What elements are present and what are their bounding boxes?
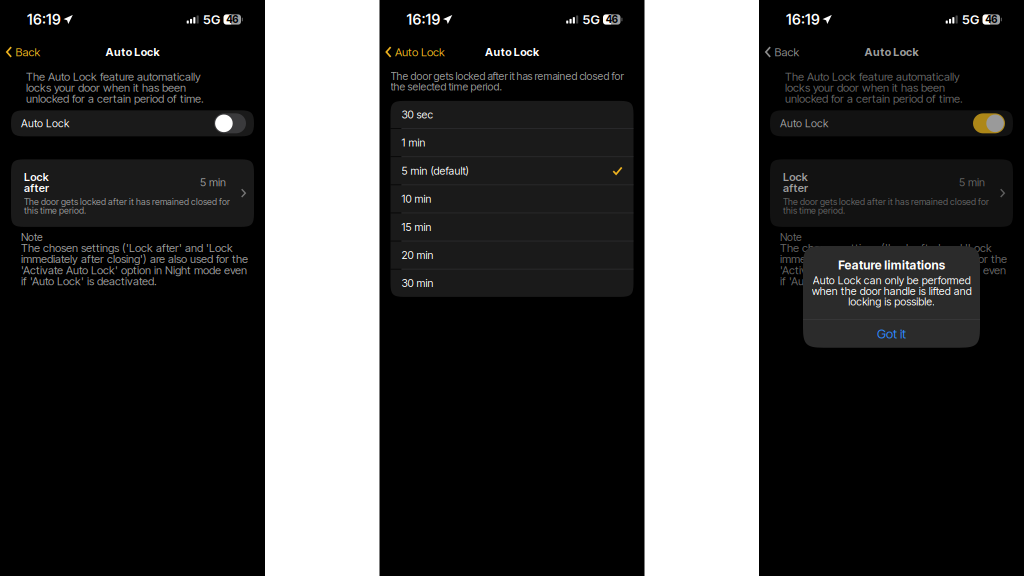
button[interactable]: 15 min <box>390 213 633 241</box>
staticText: Auto Lock <box>106 46 159 57</box>
button[interactable]: 20 min <box>390 241 633 269</box>
staticText: Auto Lock <box>21 118 69 129</box>
staticText: 15 min <box>401 222 431 232</box>
staticText: Note <box>780 232 802 242</box>
staticText: Auto Lock <box>485 46 539 57</box>
staticText: 16:19 <box>406 12 440 27</box>
button[interactable]: 30 sec <box>390 101 633 129</box>
staticText: 46 <box>985 15 997 24</box>
button[interactable]: Lock after <box>11 159 254 227</box>
staticText: 46 <box>606 15 618 24</box>
staticText: The door gets locked after it has remain… <box>24 197 230 215</box>
staticText: Lock after <box>24 171 49 193</box>
button[interactable]: Auto Lock <box>770 110 1013 136</box>
staticText: Back <box>15 46 40 58</box>
staticText: Lock after <box>783 171 808 193</box>
staticText: Feature limitations <box>838 259 945 271</box>
button[interactable]: Auto Lock <box>379 42 450 62</box>
staticText: 5 min <box>959 177 985 188</box>
staticText: The chosen settings ('Lock after' and 'L… <box>21 242 248 287</box>
staticText: 20 min <box>401 250 433 260</box>
staticText: 30 min <box>401 278 433 289</box>
staticText: The chosen settings ('Lock after' and 'L… <box>780 242 1007 287</box>
staticText: The Auto Lock feature automatically lock… <box>785 71 963 104</box>
button[interactable]: 30 min <box>390 269 633 297</box>
staticText: Back <box>774 46 799 58</box>
staticText: 1 min <box>401 137 425 148</box>
staticText: The Auto Lock feature automatically lock… <box>26 71 204 104</box>
staticText: The door gets locked after it has remain… <box>390 71 623 92</box>
staticText: The door gets locked after it has remain… <box>783 197 989 215</box>
button[interactable]: 10 min <box>390 185 633 213</box>
staticText: Auto Lock <box>780 118 828 129</box>
staticText: 5G <box>203 13 220 26</box>
button[interactable]: Back <box>0 42 45 62</box>
staticText: Note <box>21 232 43 242</box>
button[interactable]: Lock after <box>770 159 1013 227</box>
staticText: 10 min <box>401 194 431 204</box>
button[interactable]: Auto Lock <box>11 110 254 136</box>
staticText: Auto Lock can only be performed when the… <box>811 275 971 307</box>
staticText: 30 sec <box>401 109 433 120</box>
staticText: Auto Lock <box>395 46 445 58</box>
staticText: 5G <box>962 13 979 26</box>
button[interactable]: Got it <box>803 320 980 348</box>
button[interactable]: Back <box>759 42 804 62</box>
staticText: 5G <box>583 13 600 26</box>
staticText: 5 min <box>200 177 226 188</box>
button[interactable]: 1 min <box>390 129 633 157</box>
staticText: 46 <box>226 15 238 24</box>
staticText: 5 min (default) <box>401 165 468 176</box>
staticText: Auto Lock <box>865 46 918 57</box>
staticText: Got it <box>877 327 906 340</box>
staticText: 16:19 <box>27 12 61 27</box>
button[interactable]: 5 min (default) <box>390 157 633 185</box>
staticText: 16:19 <box>786 12 820 27</box>
